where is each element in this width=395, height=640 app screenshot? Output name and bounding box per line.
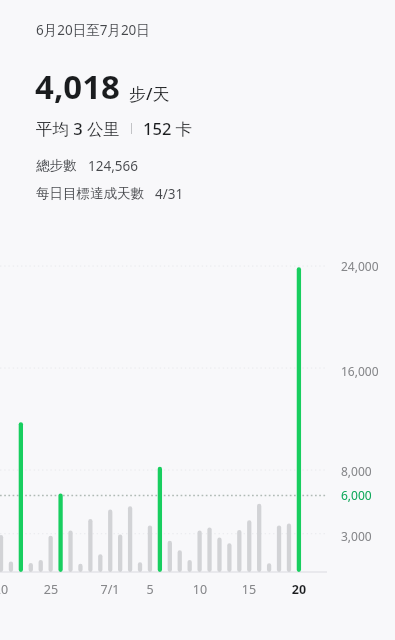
staticText: 15 (234, 581, 264, 598)
staticText: 24,000 (341, 258, 379, 274)
staticText: 平均 3 公里 (36, 117, 121, 140)
staticText: 5 (135, 581, 165, 598)
staticText: 25 (36, 581, 66, 598)
button[interactable]: 25 (36, 581, 66, 598)
staticText: 20 (284, 581, 314, 598)
staticText: 3,000 (341, 528, 372, 544)
staticText: 20 (0, 581, 16, 598)
button[interactable]: 10 (185, 581, 215, 598)
staticText: 每日目標達成天數 (36, 185, 144, 202)
staticText: 10 (185, 581, 215, 598)
staticText: 16,000 (341, 363, 379, 379)
staticText: 總步數 (36, 157, 77, 174)
button[interactable]: 20 (0, 581, 16, 598)
staticText: 8,000 (341, 463, 372, 479)
staticText: 124,566 (88, 157, 138, 175)
staticText: 4/31 (155, 185, 184, 203)
staticText: 4,018 (35, 64, 120, 109)
button[interactable]: 7/1 (95, 581, 125, 598)
button[interactable]: 6月20日至7月20日 (36, 21, 150, 39)
staticText: 7/1 (95, 581, 125, 598)
button[interactable]: 5 (135, 581, 165, 598)
staticText: 152 卡 (143, 117, 193, 140)
button[interactable]: 15 (234, 581, 264, 598)
staticText: 6月20日至7月20日 (36, 21, 150, 39)
button[interactable]: 20 (284, 581, 314, 598)
staticText: 步/天 (129, 82, 170, 105)
staticText: 6,000 (341, 487, 372, 503)
